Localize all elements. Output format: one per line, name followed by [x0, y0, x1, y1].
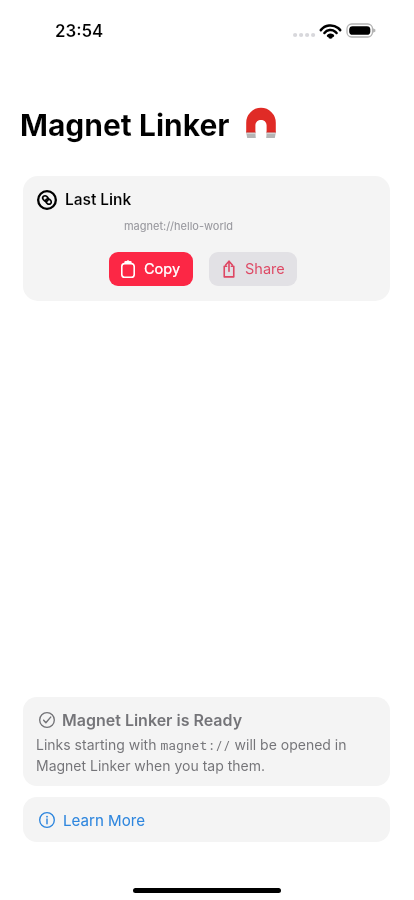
other: Wi-Fi — [321, 24, 340, 38]
button[interactable]: Learn More — [23, 797, 390, 842]
other: Magnet — [244, 107, 278, 141]
button[interactable]: Share — [209, 252, 297, 286]
staticText: 23:54 — [55, 21, 104, 41]
staticText: Copy — [144, 260, 181, 278]
staticText: Magnet Linker is Ready — [62, 710, 243, 729]
staticText: Learn More — [63, 811, 145, 829]
other: Cellular signal — [293, 32, 313, 38]
button[interactable]: Copy — [109, 252, 193, 286]
other: Battery full — [347, 24, 376, 37]
staticText: magnet://hello-world — [23, 219, 334, 232]
staticText: Share — [245, 260, 285, 278]
staticText: Magnet Linker — [20, 107, 230, 143]
staticText: Links starting with magnet:// will be op… — [36, 736, 376, 774]
staticText: Last Link — [65, 190, 132, 209]
other: Link — [37, 190, 57, 210]
